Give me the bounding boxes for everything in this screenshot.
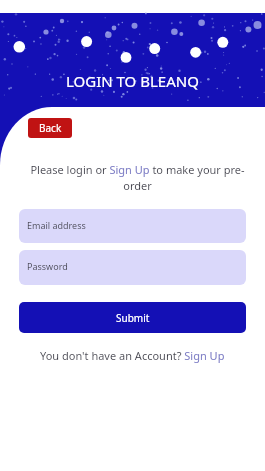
staticText: Please login or Sign Up to make your pre… [29, 162, 246, 193]
button[interactable]: Submit [19, 302, 246, 333]
staticText: LOGIN TO BLEANQ [66, 71, 199, 91]
staticText: Back [39, 121, 62, 135]
button[interactable]: Password [19, 250, 246, 285]
staticText: You don't have an Account? Sign Up [40, 348, 225, 363]
staticText: Email address [27, 219, 86, 231]
staticText: Submit [116, 311, 150, 325]
staticText: Password [27, 260, 68, 272]
button[interactable]: Email address [19, 209, 246, 243]
button[interactable]: Back [28, 118, 72, 138]
